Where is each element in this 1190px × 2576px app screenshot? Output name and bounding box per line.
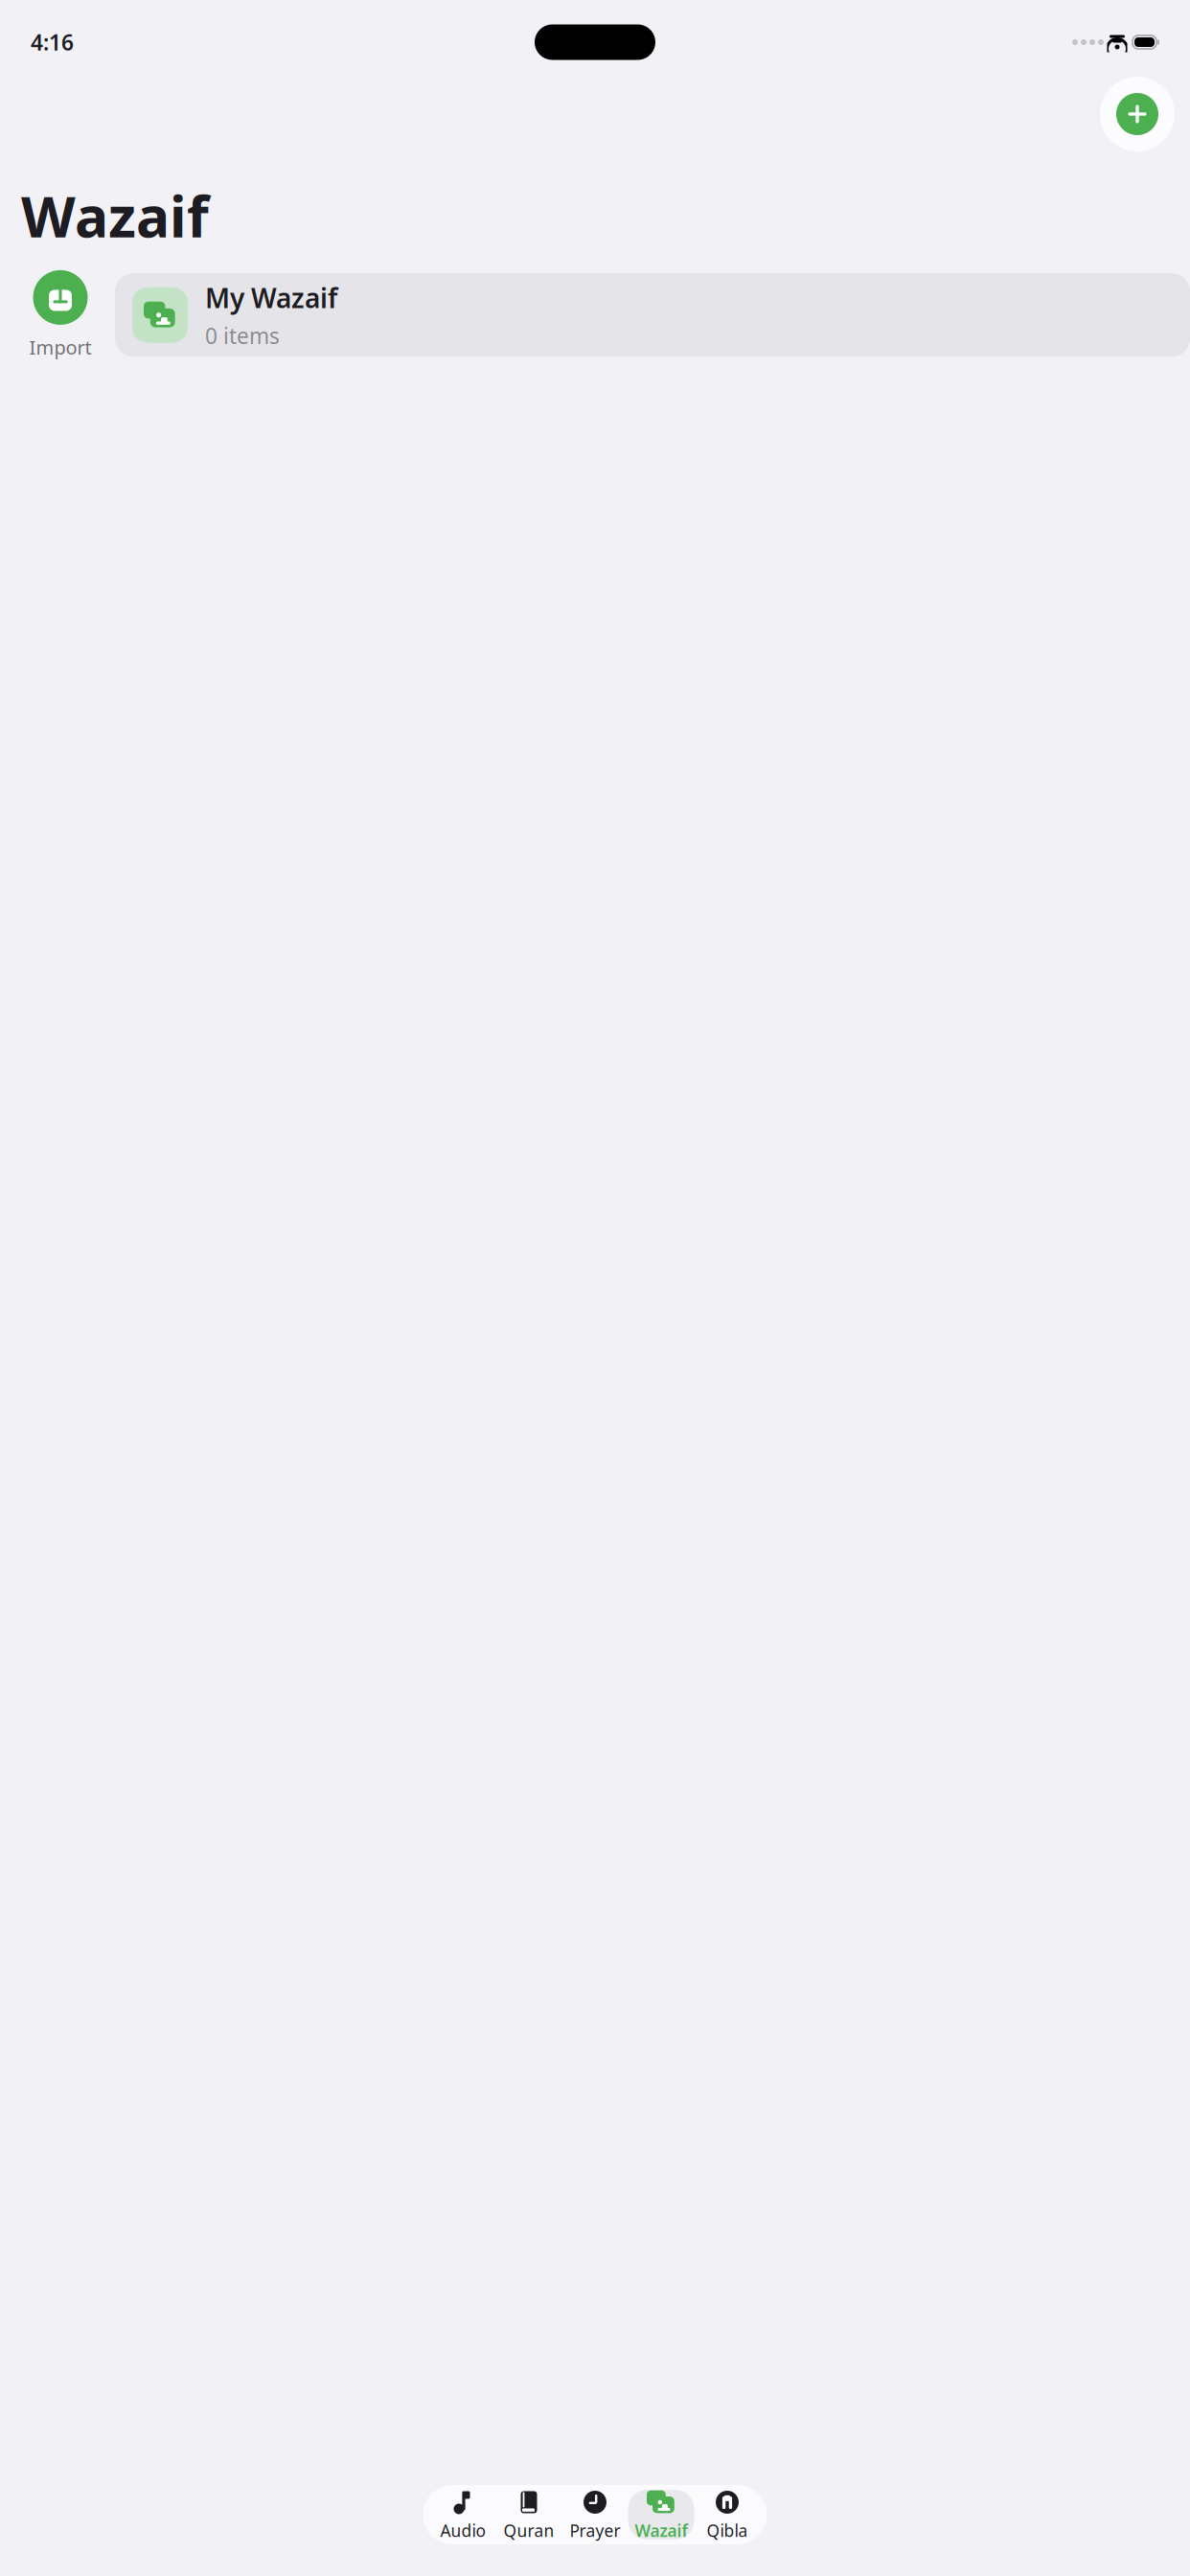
staticText: 4:16	[31, 28, 74, 57]
staticText: 0 items	[205, 321, 280, 350]
staticText: Import	[29, 334, 92, 360]
staticText: Quran	[503, 2519, 554, 2541]
staticText: Wazaif	[635, 2519, 687, 2541]
staticText: Wazaif	[21, 178, 209, 253]
staticText: My Wazaif	[205, 280, 337, 315]
button[interactable]: Add	[1100, 77, 1175, 151]
button[interactable]: My Wazaif	[115, 273, 1190, 357]
staticText: Audio	[440, 2519, 485, 2541]
staticText: Prayer	[570, 2519, 620, 2541]
button[interactable]: Qibla	[694, 2490, 760, 2540]
staticText: Qibla	[707, 2519, 748, 2541]
button[interactable]: Import	[19, 270, 102, 360]
button[interactable]: Audio	[430, 2490, 496, 2540]
button[interactable]: Quran	[496, 2490, 562, 2540]
button[interactable]: Prayer	[562, 2490, 628, 2540]
button[interactable]: Wazaif	[628, 2490, 694, 2540]
